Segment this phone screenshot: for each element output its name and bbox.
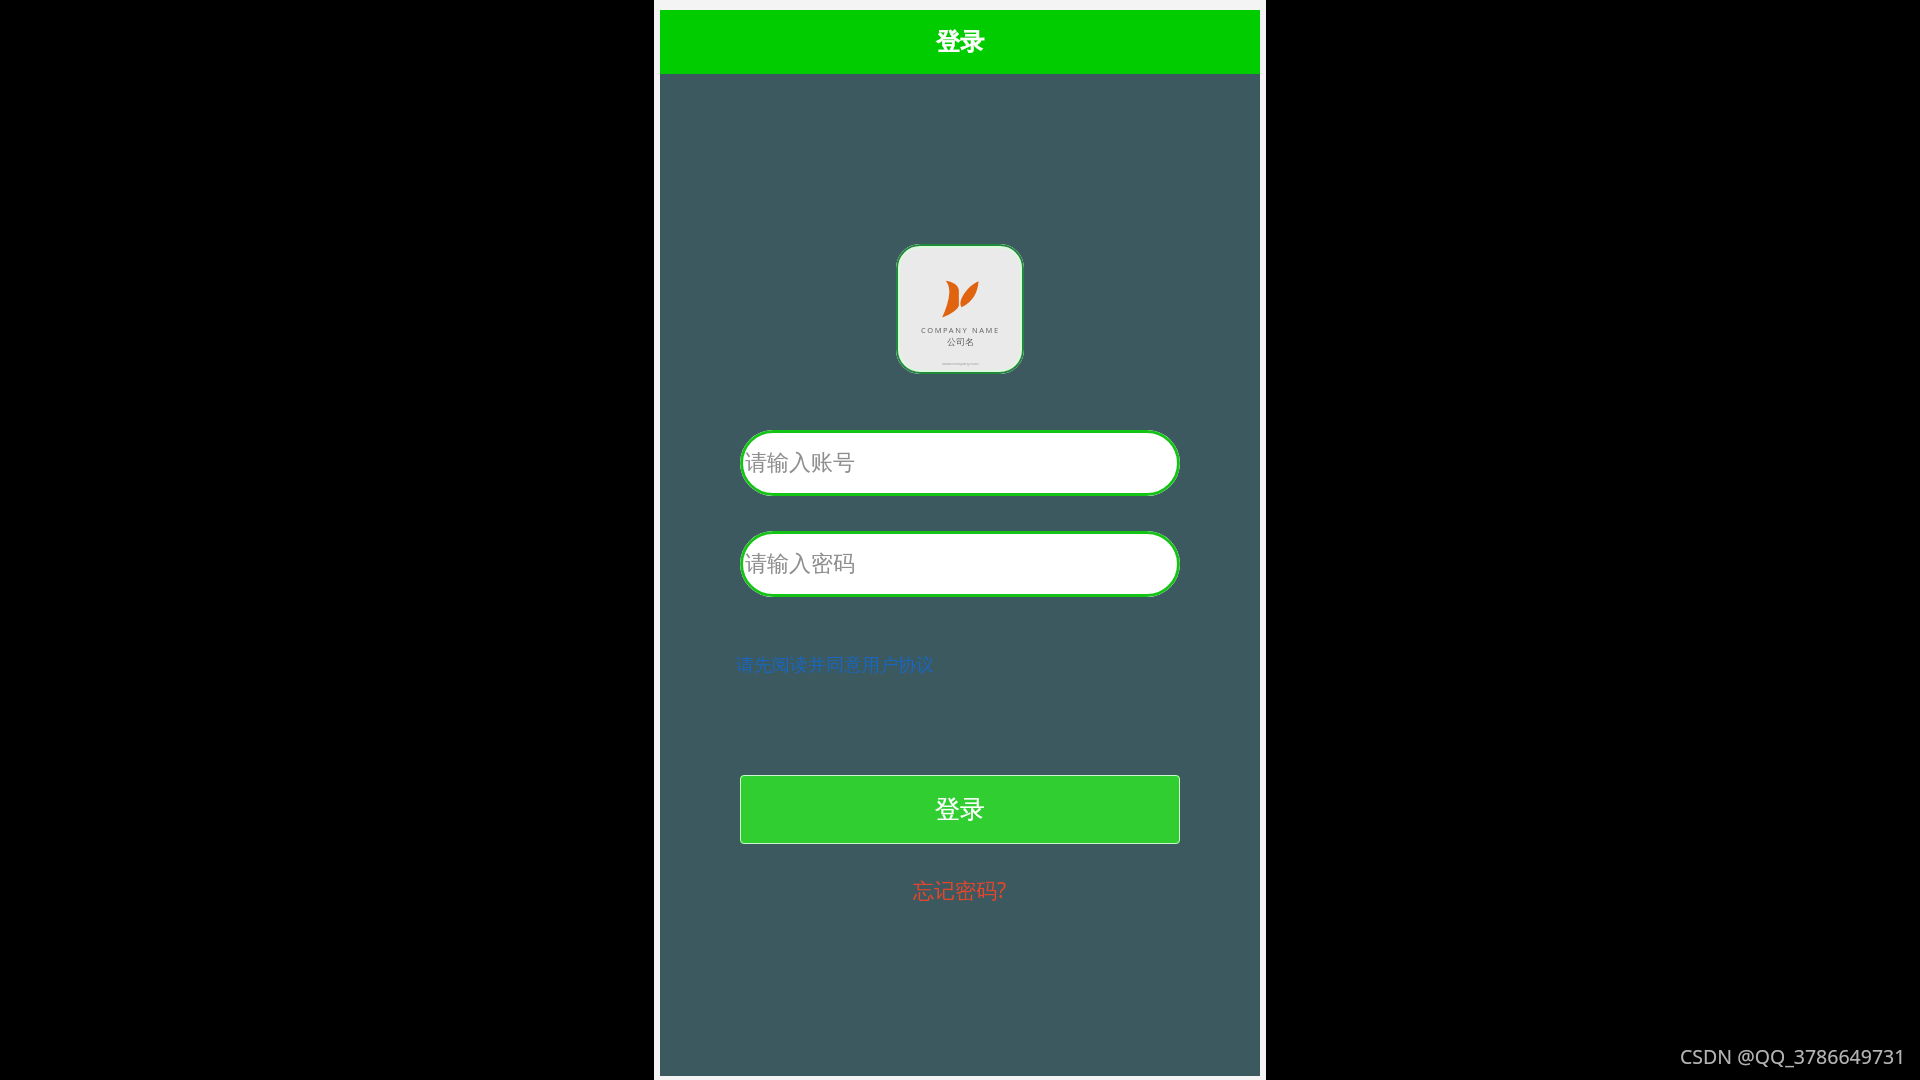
staticText: 请输入账号 <box>745 449 855 477</box>
other: Company logo <box>896 244 1024 374</box>
button[interactable]: 登录 <box>740 775 1180 844</box>
staticText: 公司名 <box>947 336 974 347</box>
button[interactable]: 请输入账号 <box>740 430 1180 496</box>
staticText: 请先阅读并同意用户协议 <box>736 654 934 677</box>
staticText: CSDN @QQ_3786649731 <box>1680 1043 1906 1070</box>
button[interactable]: 请输入密码 <box>740 531 1180 597</box>
staticText: 请输入密码 <box>745 550 855 578</box>
staticText: 登录 <box>936 27 984 57</box>
staticText: COMPANY NAME <box>921 325 1000 335</box>
staticText: 登录 <box>935 794 985 825</box>
staticText: 忘记密码? <box>913 876 1007 905</box>
button[interactable]: 请先阅读并同意用户协议 <box>736 654 934 677</box>
staticText: www.company.com <box>942 361 979 366</box>
button[interactable]: 忘记密码? <box>913 876 1007 905</box>
